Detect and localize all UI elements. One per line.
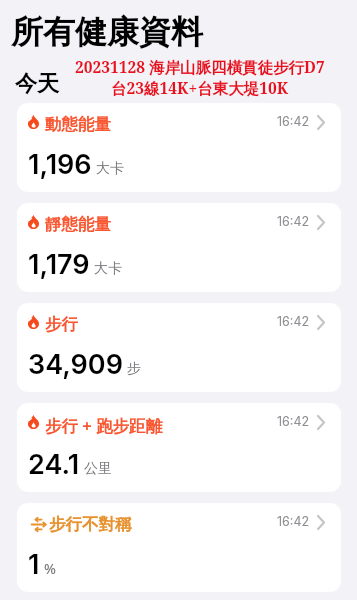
button[interactable]: 靜態能量	[17, 203, 341, 292]
staticText: 16:42	[277, 214, 310, 229]
staticText: 公里	[84, 460, 112, 478]
staticText: 靜態能量	[45, 214, 111, 235]
staticText: 20231128 海岸山脈四橫貫徒步行D7	[75, 56, 325, 77]
staticText: 大卡	[94, 260, 122, 278]
staticText: 16:42	[277, 114, 310, 129]
staticText: 34,909	[28, 348, 123, 381]
staticText: 1	[28, 548, 40, 581]
staticText: 1,179	[28, 248, 90, 281]
staticText: 台23線14K+台東大堤10K	[111, 77, 289, 98]
staticText: 所有健康資料	[11, 12, 203, 52]
button[interactable]: 動態能量	[17, 103, 341, 192]
staticText: 16:42	[277, 314, 310, 329]
staticText: 24.1	[28, 448, 80, 481]
button[interactable]: 步行 + 跑步距離	[17, 403, 341, 492]
staticText: 16:42	[277, 414, 310, 429]
staticText: 大卡	[96, 160, 124, 178]
button[interactable]: 步行	[17, 303, 341, 392]
staticText: 步行 + 跑步距離	[45, 414, 163, 437]
staticText: %	[44, 559, 56, 578]
staticText: 步行不對稱	[49, 514, 132, 535]
staticText: 步	[127, 360, 141, 378]
staticText: 步行	[45, 314, 78, 335]
staticText: 今天	[15, 70, 59, 98]
staticText: 動態能量	[45, 114, 111, 135]
button[interactable]: 步行不對稱	[17, 503, 341, 592]
staticText: 1,196	[28, 148, 92, 181]
staticText: 16:42	[277, 514, 310, 529]
